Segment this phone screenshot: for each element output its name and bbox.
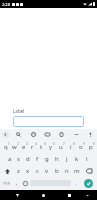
button[interactable]: r (28, 140, 37, 153)
button[interactable]: g (42, 153, 52, 165)
button[interactable]: m (72, 165, 82, 177)
staticText: 8 (73, 142, 75, 146)
button[interactable]: Backspace (82, 165, 96, 177)
button[interactable]: n (62, 165, 72, 177)
button[interactable]: k (72, 153, 82, 165)
staticText: p (89, 143, 93, 151)
staticText: 2 (17, 142, 19, 146)
button[interactable]: . (71, 177, 80, 189)
staticText: w (12, 143, 17, 151)
staticText: x (26, 167, 30, 175)
button[interactable]: Enter (84, 179, 93, 188)
staticText: Label (13, 108, 25, 114)
button[interactable]: a (5, 153, 14, 165)
button[interactable]: Close toolbar (2, 131, 9, 138)
staticText: b (55, 167, 59, 175)
staticText: s (17, 155, 20, 163)
button[interactable]: b (52, 165, 62, 177)
button[interactable]: h (52, 153, 62, 165)
button[interactable]: e (19, 140, 28, 153)
staticText: z (17, 167, 20, 175)
button[interactable]: p (86, 140, 96, 153)
button[interactable]: j (62, 153, 72, 165)
staticText: y (49, 143, 53, 151)
staticText: q (4, 143, 8, 151)
staticText: 0 (93, 142, 95, 146)
button[interactable]: i (66, 140, 76, 153)
button[interactable]: Back (12, 190, 22, 200)
staticText: 6 (53, 142, 55, 146)
staticText: a (8, 155, 12, 163)
staticText: t (40, 143, 43, 151)
staticText: 5 (44, 142, 46, 146)
staticText: 1 (8, 142, 10, 146)
staticText: ?1© (3, 181, 11, 186)
button[interactable]: w (10, 140, 19, 153)
staticText: u (59, 143, 63, 151)
button[interactable]: More options (72, 130, 81, 139)
button[interactable]: z (14, 165, 23, 177)
button[interactable]: d (23, 153, 32, 165)
button[interactable]: Voice input (86, 130, 95, 139)
button[interactable]: Search (14, 130, 23, 139)
staticText: 4 (35, 142, 37, 146)
button[interactable]: Hide keyboard (82, 190, 92, 200)
staticText: o (79, 143, 83, 151)
staticText: . (75, 180, 77, 187)
staticText: 7 (63, 142, 65, 146)
staticText: d (26, 155, 30, 163)
button[interactable]: GIF (43, 130, 52, 139)
staticText: 3 (26, 142, 28, 146)
staticText: j (66, 155, 68, 163)
staticText: 2:28 (2, 2, 10, 7)
staticText: g (45, 155, 49, 163)
staticText: l (86, 155, 88, 163)
staticText: k (75, 155, 79, 163)
staticText: i (70, 143, 72, 151)
button[interactable]: c (32, 165, 42, 177)
staticText: 9 (83, 142, 85, 146)
button[interactable]: Clipboard (57, 130, 66, 139)
staticText: n (65, 167, 69, 175)
button[interactable]: Recents (64, 190, 74, 200)
button[interactable]: v (42, 165, 52, 177)
staticText: c (36, 167, 39, 175)
button[interactable]: l (82, 153, 92, 165)
staticText: f (36, 155, 39, 163)
button[interactable]: s (14, 153, 23, 165)
staticText: h (55, 155, 59, 163)
button[interactable]: Stickers (29, 130, 38, 139)
button[interactable]: Shift (1, 165, 14, 177)
button[interactable]: ?1© (1, 177, 13, 189)
staticText: r (31, 143, 34, 151)
staticText: , (16, 180, 18, 187)
button[interactable]: x (23, 165, 32, 177)
staticText: v (45, 167, 49, 175)
staticText: m (74, 167, 80, 175)
button[interactable]: Home (38, 190, 48, 200)
button[interactable]: q (1, 140, 10, 153)
button[interactable]: , (13, 177, 21, 189)
button[interactable]: Emoji (21, 177, 30, 189)
button[interactable]: t (37, 140, 46, 153)
button[interactable]: f (32, 153, 42, 165)
button[interactable]: u (56, 140, 66, 153)
button[interactable]: y (46, 140, 56, 153)
button[interactable] (13, 116, 84, 127)
staticText: e (22, 143, 26, 151)
button[interactable]: o (76, 140, 86, 153)
